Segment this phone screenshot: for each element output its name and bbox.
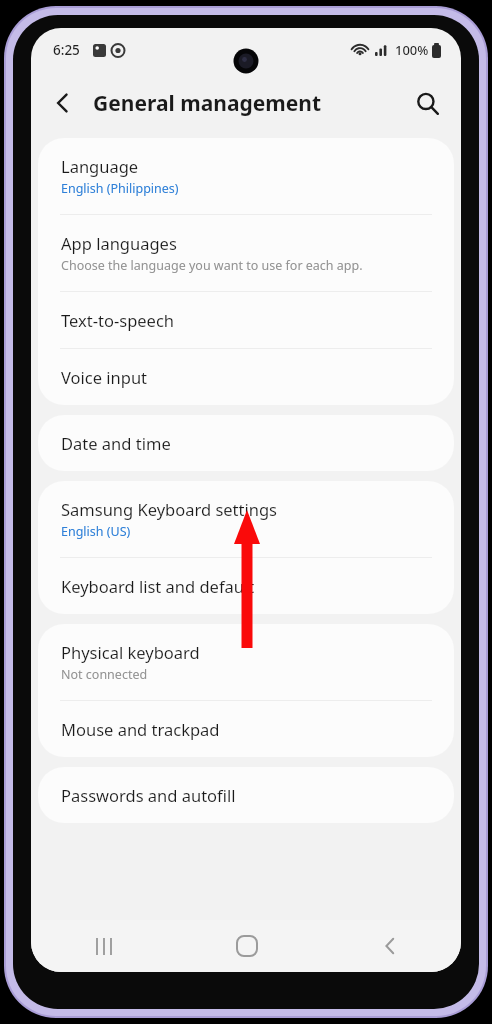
staticText: App languages — [61, 232, 177, 254]
button[interactable]: Back — [39, 79, 87, 127]
staticText: Mouse and trackpad — [61, 718, 220, 740]
button[interactable]: Date and time — [38, 415, 454, 471]
button[interactable]: Text-to-speech — [38, 292, 454, 349]
button[interactable]: Voice input — [38, 349, 454, 405]
staticText: Date and time — [61, 432, 171, 454]
staticText: 6:25 — [53, 41, 80, 59]
staticText: Keyboard list and default — [61, 575, 255, 597]
button[interactable]: Keyboard list and default — [38, 558, 454, 614]
staticText: Language — [61, 155, 139, 177]
button[interactable]: Search — [403, 79, 451, 127]
staticText: Physical keyboard — [61, 641, 200, 663]
staticText: Choose the language you want to use for … — [61, 257, 363, 274]
staticText: 100% — [395, 41, 429, 59]
staticText: Voice input — [61, 366, 148, 388]
button[interactable]: Samsung Keyboard settings — [38, 481, 454, 558]
button[interactable]: Language — [38, 138, 454, 215]
button[interactable]: App languages — [38, 215, 454, 292]
staticText: Text-to-speech — [61, 309, 175, 331]
button[interactable]: Home — [175, 920, 318, 972]
staticText: Not connected — [61, 666, 148, 683]
button[interactable]: Physical keyboard — [38, 624, 454, 701]
button[interactable]: Passwords and autofill — [38, 767, 454, 823]
staticText: Passwords and autofill — [61, 784, 236, 806]
staticText: General management — [93, 89, 322, 118]
button[interactable]: Back — [318, 920, 461, 972]
button[interactable]: Mouse and trackpad — [38, 701, 454, 757]
staticText: English (Philippines) — [61, 180, 179, 197]
staticText: English (US) — [61, 523, 131, 540]
staticText: Samsung Keyboard settings — [61, 498, 278, 520]
button[interactable]: Recents — [31, 920, 175, 972]
